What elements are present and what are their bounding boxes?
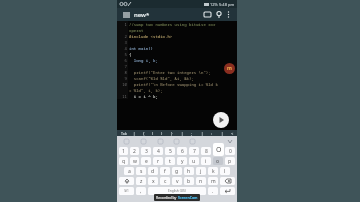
button[interactable]: : — [207, 130, 217, 136]
button[interactable]: j — [196, 167, 206, 175]
button[interactable]: Window — [202, 9, 213, 20]
button[interactable]: Badge — [224, 63, 235, 74]
staticText: k — [212, 168, 215, 175]
button[interactable]: Keyboard tool 3 — [168, 136, 184, 146]
button[interactable]: o — [213, 157, 223, 165]
button[interactable]: w — [130, 157, 139, 165]
staticText: < — [231, 131, 234, 136]
staticText: l — [224, 168, 226, 175]
button[interactable]: 9 — [213, 147, 223, 155]
button[interactable]: ; — [187, 130, 197, 136]
staticText: //swap two numbers using bitwise xor — [129, 22, 216, 27]
button[interactable]: | — [197, 130, 207, 136]
button[interactable]: } — [167, 130, 177, 136]
staticText: new* — [134, 11, 150, 19]
button[interactable]: Expand — [223, 136, 236, 146]
button[interactable]: 4 — [153, 147, 163, 155]
button[interactable]: 0 — [225, 147, 235, 155]
staticText: c — [164, 178, 167, 185]
button[interactable]: enter — [220, 187, 235, 195]
button[interactable]: . — [208, 187, 218, 195]
button[interactable]: r — [153, 157, 163, 165]
button[interactable]: < — [227, 130, 237, 136]
button[interactable]: 5 — [165, 147, 175, 155]
staticText: 11 — [122, 94, 127, 99]
button[interactable]: { — [139, 130, 148, 136]
button[interactable]: Menu — [121, 10, 131, 20]
button[interactable]: Run — [213, 112, 229, 128]
staticText: b — [187, 178, 191, 185]
button[interactable]: s — [136, 167, 146, 175]
staticText: 3 — [124, 40, 127, 45]
button[interactable]: , — [136, 187, 146, 195]
button[interactable]: 6 — [177, 147, 187, 155]
button[interactable]: f — [160, 167, 170, 175]
button[interactable]: 1 — [119, 147, 128, 155]
staticText: n — [199, 178, 203, 185]
button[interactable]: k — [208, 167, 218, 175]
staticText: | — [221, 131, 224, 136]
button[interactable]: i — [201, 157, 211, 165]
staticText: 8 — [205, 148, 208, 155]
staticText: { — [143, 131, 145, 136]
button[interactable]: m — [208, 177, 218, 185]
button[interactable]: Location — [213, 9, 224, 20]
button[interactable]: a — [124, 167, 134, 175]
button[interactable]: t — [165, 157, 175, 165]
button[interactable]: y — [177, 157, 187, 165]
button[interactable]: e — [141, 157, 151, 165]
button[interactable]: n — [196, 177, 206, 185]
staticText: d — [151, 168, 155, 175]
button[interactable]: z — [136, 177, 146, 185]
button[interactable]: ) — [157, 130, 167, 136]
staticText: j — [200, 168, 202, 175]
staticText: !#1 — [124, 189, 129, 193]
staticText: ; — [191, 131, 193, 136]
staticText: v — [176, 178, 179, 185]
button[interactable]: Keyboard tool 0 — [118, 136, 135, 146]
staticText: 7 — [193, 148, 196, 155]
button[interactable]: 2 — [130, 147, 139, 155]
button[interactable]: h — [184, 167, 194, 175]
staticText: i = i ^ k; — [129, 94, 158, 99]
staticText: o — [216, 158, 220, 165]
button[interactable]: 8 — [201, 147, 211, 155]
staticText: | — [181, 131, 184, 136]
button[interactable]: Keyboard tool 4 — [184, 136, 200, 146]
button[interactable]: !#1 — [119, 187, 134, 195]
button[interactable]: g — [172, 167, 182, 175]
staticText: f — [164, 168, 166, 175]
button[interactable]: 3 — [141, 147, 151, 155]
button[interactable]: v — [172, 177, 182, 185]
staticText: Tab — [121, 131, 127, 136]
staticText: long i, k; — [129, 58, 158, 63]
staticText: 5 — [124, 52, 127, 57]
staticText: O — [216, 145, 222, 155]
staticText: 2 — [133, 148, 136, 155]
button[interactable]: u — [189, 157, 199, 165]
staticText: | — [201, 131, 204, 136]
button[interactable]: b — [184, 177, 194, 185]
button[interactable]: Keyboard tool 1 — [135, 136, 152, 146]
button[interactable]: x — [148, 177, 158, 185]
button[interactable]: del — [220, 177, 235, 185]
button[interactable]: English (US) — [148, 187, 206, 195]
button[interactable]: Keyboard tool 2 — [152, 136, 168, 146]
button[interactable]: More options — [224, 10, 233, 19]
staticText: int main() — [129, 46, 153, 51]
staticText: 7 — [124, 64, 127, 69]
button[interactable]: shift — [119, 177, 134, 185]
button[interactable]: | — [177, 130, 187, 136]
button[interactable]: q — [119, 157, 128, 165]
button[interactable]: | — [130, 130, 139, 136]
staticText: scanf("%ld %ld", &i, &k); — [129, 76, 194, 81]
button[interactable]: l — [220, 167, 230, 175]
button[interactable]: d — [148, 167, 158, 175]
button[interactable]: ( — [148, 130, 157, 136]
button[interactable]: | — [217, 130, 227, 136]
button[interactable]: Tab — [117, 130, 130, 136]
button[interactable]: c — [160, 177, 170, 185]
staticText: r — [157, 158, 160, 165]
button[interactable]: p — [225, 157, 235, 165]
button[interactable]: 7 — [189, 147, 199, 155]
